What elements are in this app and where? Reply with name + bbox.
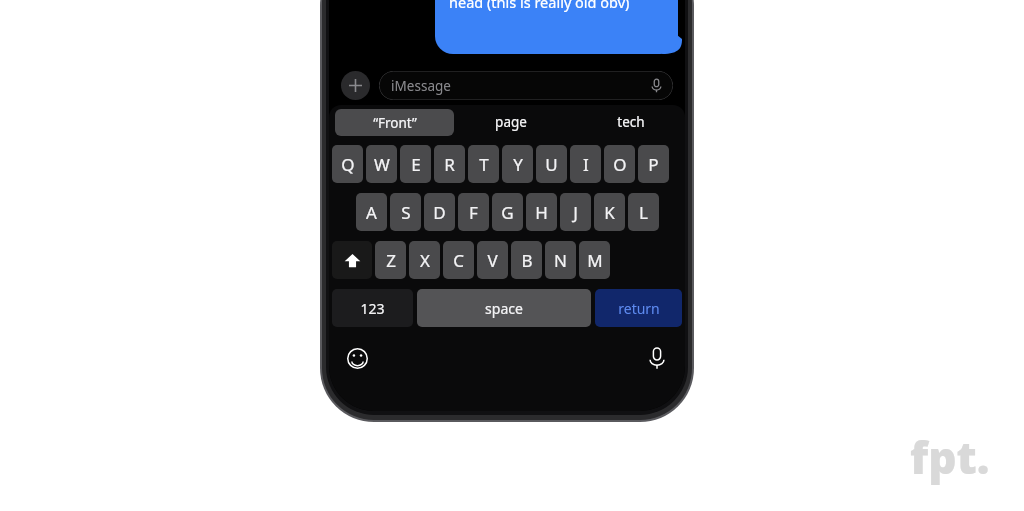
button[interactable]: O — [604, 145, 635, 183]
staticText: V — [487, 249, 498, 272]
staticText: X — [420, 249, 430, 272]
staticText: “Front” — [373, 114, 417, 132]
staticText: W — [374, 153, 390, 176]
button[interactable]: Add attachment — [341, 71, 370, 100]
button[interactable]: P — [638, 145, 669, 183]
staticText: fpt. — [910, 427, 990, 487]
staticText: F — [469, 201, 478, 224]
button[interactable]: N — [545, 241, 576, 279]
staticText: G — [501, 201, 514, 224]
button[interactable]: Shift — [332, 241, 372, 279]
staticText: iMessage — [391, 77, 451, 95]
button[interactable]: K — [594, 193, 625, 231]
button[interactable]: Emoji — [345, 346, 369, 370]
staticText: T — [479, 153, 489, 176]
staticText: B — [521, 249, 533, 272]
staticText: C — [453, 249, 464, 272]
staticText: H — [535, 201, 548, 224]
button[interactable]: space — [417, 289, 591, 327]
staticText: return — [618, 299, 660, 318]
button[interactable]: 123 — [332, 289, 413, 327]
button[interactable]: D — [424, 193, 455, 231]
staticText: U — [545, 153, 558, 176]
button[interactable]: return — [595, 289, 682, 327]
staticText: N — [554, 249, 567, 272]
button[interactable]: H — [526, 193, 557, 231]
staticText: J — [573, 201, 578, 224]
staticText: 123 — [360, 299, 385, 318]
button[interactable]: Z — [375, 241, 406, 279]
staticText: page — [495, 113, 527, 131]
button[interactable]: Dictate — [649, 78, 664, 93]
staticText: O — [613, 153, 627, 176]
staticText: Z — [386, 249, 396, 272]
button[interactable]: L — [628, 193, 659, 231]
button[interactable]: U — [536, 145, 567, 183]
staticText: tech — [617, 113, 645, 131]
button[interactable]: Y — [502, 145, 533, 183]
button[interactable]: C — [443, 241, 474, 279]
staticText: L — [639, 201, 648, 224]
staticText: K — [604, 201, 615, 224]
button[interactable]: I — [570, 145, 601, 183]
button[interactable]: J — [560, 193, 591, 231]
button[interactable]: G — [492, 193, 523, 231]
staticText: space — [485, 299, 523, 318]
button[interactable]: A — [356, 193, 387, 231]
button[interactable]: W — [366, 145, 397, 183]
button[interactable]: page — [471, 105, 551, 139]
button[interactable]: T — [468, 145, 499, 183]
button[interactable]: R — [434, 145, 465, 183]
button[interactable]: Q — [332, 145, 363, 183]
staticText: Q — [341, 153, 355, 176]
button[interactable]: B — [511, 241, 542, 279]
staticText: R — [444, 153, 455, 176]
button[interactable]: “Front” — [335, 109, 454, 136]
staticText: S — [401, 201, 411, 224]
button[interactable]: tech — [591, 105, 671, 139]
button[interactable]: X — [409, 241, 440, 279]
button[interactable]: S — [390, 193, 421, 231]
button[interactable]: Dictation — [645, 346, 669, 370]
button[interactable]: M — [579, 241, 610, 279]
staticText: M — [587, 249, 603, 272]
staticText: E — [411, 153, 421, 176]
button[interactable]: iMessage — [379, 71, 673, 100]
staticText: Y — [513, 153, 523, 176]
staticText: I — [583, 153, 589, 176]
button[interactable]: V — [477, 241, 508, 279]
button[interactable]: E — [400, 145, 431, 183]
staticText: P — [648, 153, 659, 176]
staticText: D — [433, 201, 446, 224]
staticText: Thats the Y axis in my dumbass head (thi… — [449, 0, 663, 12]
staticText: A — [366, 201, 377, 224]
button[interactable]: F — [458, 193, 489, 231]
